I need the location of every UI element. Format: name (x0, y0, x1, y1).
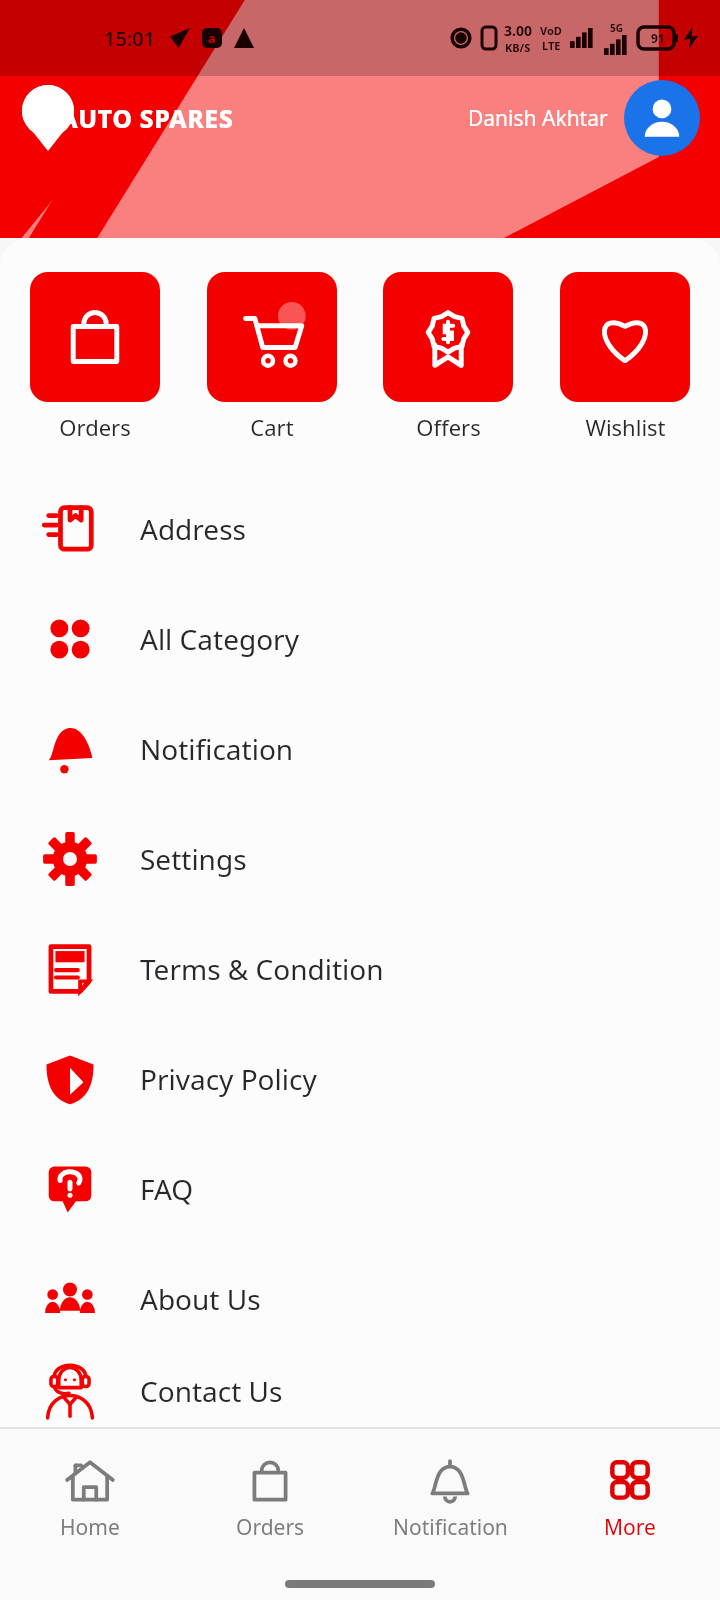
staticText: 3.00 (504, 21, 532, 40)
button[interactable]: Privacy Policy (0, 1024, 720, 1134)
button[interactable]: Home (0, 1455, 180, 1542)
staticText: More (604, 1513, 656, 1542)
button[interactable]: Profile (624, 80, 700, 156)
button[interactable]: Orders (30, 272, 160, 442)
staticText: VoD (540, 23, 562, 38)
staticText: Terms & Condition (140, 950, 384, 988)
staticText: Address (140, 510, 246, 548)
button[interactable]: All Category (0, 584, 720, 694)
button[interactable]: Settings (0, 804, 720, 914)
staticText: About Us (140, 1280, 261, 1318)
staticText: AUTO SPARES (60, 101, 234, 135)
button[interactable]: About Us (0, 1244, 720, 1354)
staticText: Offers (416, 412, 481, 442)
staticText: Settings (140, 840, 247, 878)
button[interactable]: FAQ (0, 1134, 720, 1244)
staticText: Notification (140, 730, 294, 768)
button[interactable]: Notification (360, 1455, 540, 1542)
button[interactable]: Notification (0, 694, 720, 804)
button[interactable]: Orders (180, 1455, 360, 1542)
staticText: KB/S (505, 40, 531, 55)
staticText: 15:01 (104, 25, 156, 52)
staticText: Danish Akhtar (468, 104, 608, 133)
button[interactable]: Terms & Condition (0, 914, 720, 1024)
staticText: Home (60, 1513, 120, 1542)
staticText: 5G (610, 21, 623, 35)
staticText: Privacy Policy (140, 1060, 317, 1098)
staticText: Wishlist (585, 412, 666, 442)
staticText: Orders (236, 1513, 305, 1542)
button[interactable]: Address (0, 474, 720, 584)
staticText: Notification (393, 1513, 508, 1542)
button[interactable]: Contact Us (0, 1354, 720, 1428)
staticText: FAQ (140, 1170, 194, 1208)
button[interactable]: More (540, 1455, 720, 1542)
staticText: a (208, 29, 216, 47)
staticText: 91 (651, 30, 665, 46)
staticText: LTE (542, 38, 561, 53)
button[interactable]: Offers (383, 272, 513, 442)
staticText: Orders (59, 412, 131, 442)
button[interactable]: Cart (207, 272, 337, 442)
button[interactable]: Wishlist (560, 272, 690, 442)
staticText: All Category (140, 620, 299, 658)
staticText: Cart (250, 412, 294, 442)
staticText: Contact Us (140, 1372, 283, 1410)
